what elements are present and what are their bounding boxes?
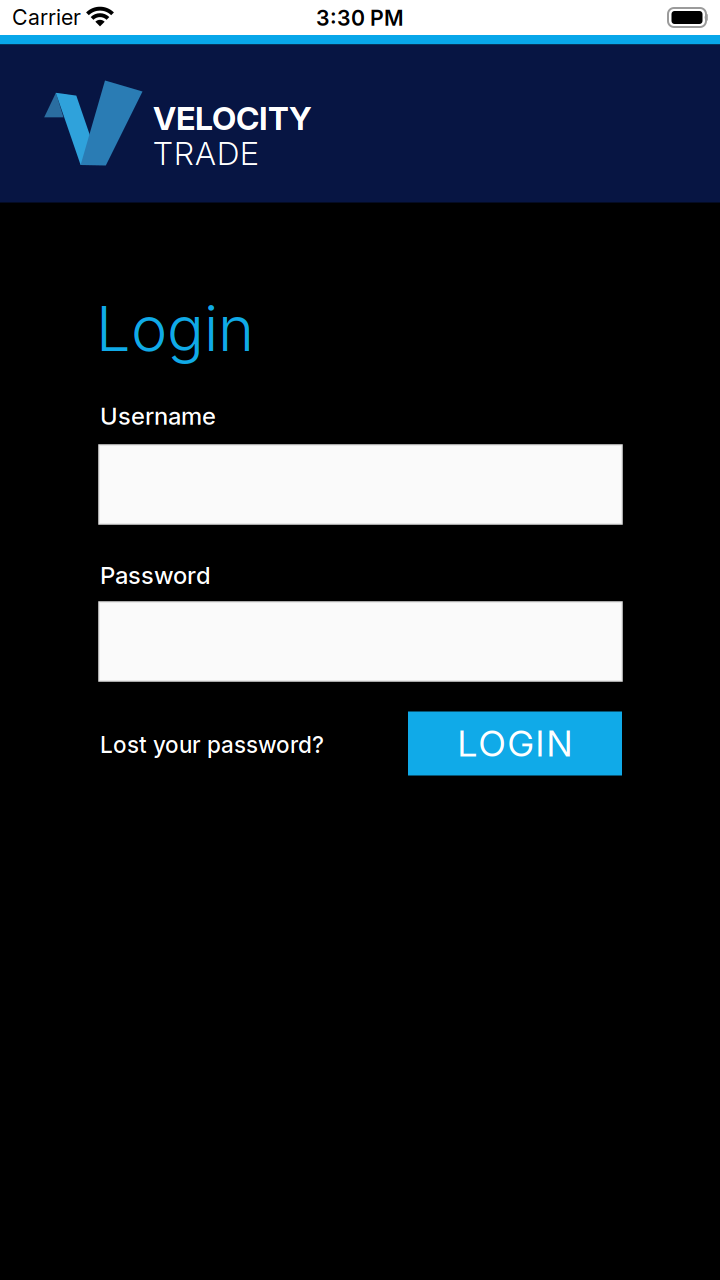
staticText: Lost your password?	[100, 731, 324, 758]
button[interactable]: Username	[99, 445, 622, 524]
staticText: Login	[96, 292, 254, 365]
staticText: LOGIN	[457, 722, 572, 765]
staticText: VELOCITY	[153, 99, 312, 137]
button[interactable]: LOGIN	[408, 711, 622, 775]
button[interactable]: Password	[99, 602, 622, 681]
staticText: Username	[100, 402, 216, 430]
staticText: Carrier	[12, 5, 81, 30]
staticText: TRADE	[153, 134, 259, 172]
staticText: Password	[100, 561, 211, 589]
staticText: 3:30 PM	[316, 5, 404, 31]
button[interactable]: Lost your password?	[100, 731, 324, 758]
